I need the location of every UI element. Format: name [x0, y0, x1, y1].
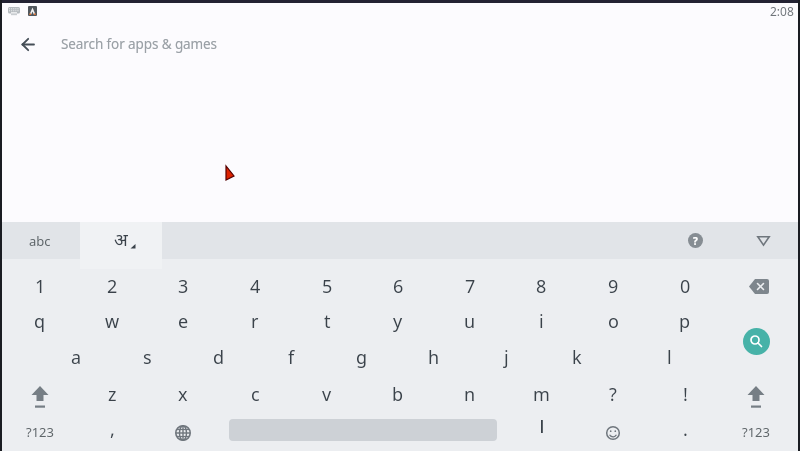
button[interactable]: [14, 30, 42, 58]
button[interactable]: n: [434, 378, 506, 415]
staticText: ?123: [742, 423, 770, 441]
staticText: y: [393, 309, 403, 334]
button[interactable]: p: [649, 305, 721, 342]
button[interactable]: [147, 414, 219, 451]
staticText: Search for apps & games: [61, 35, 217, 53]
staticText: 5: [322, 274, 333, 299]
staticText: o: [608, 309, 619, 334]
button[interactable]: [750, 230, 776, 252]
button[interactable]: v: [291, 378, 363, 415]
staticText: !: [683, 382, 688, 407]
button[interactable]: [80, 222, 162, 269]
staticText: 3: [178, 274, 189, 299]
button[interactable]: 9: [577, 268, 649, 305]
button[interactable]: h: [398, 341, 470, 378]
staticText: m: [533, 382, 550, 407]
staticText: i: [539, 309, 544, 334]
staticText: p: [679, 309, 691, 334]
button[interactable]: j: [470, 341, 542, 378]
button[interactable]: u: [434, 305, 506, 342]
button[interactable]: [4, 378, 76, 415]
button[interactable]: 8: [505, 268, 577, 305]
button[interactable]: k: [541, 341, 613, 378]
button[interactable]: [720, 378, 792, 415]
button[interactable]: Search for apps & games: [61, 30, 461, 58]
staticText: 2: [107, 274, 118, 299]
button[interactable]: m: [505, 378, 577, 415]
staticText: u: [464, 309, 476, 334]
button[interactable]: l: [633, 341, 705, 378]
staticText: abc: [29, 232, 51, 250]
button[interactable]: .: [649, 414, 721, 451]
button[interactable]: 2: [76, 268, 148, 305]
staticText: 4: [250, 274, 261, 299]
staticText: w: [105, 309, 120, 334]
button[interactable]: ?: [688, 233, 703, 248]
staticText: e: [178, 309, 189, 334]
button[interactable]: ,: [76, 414, 148, 451]
staticText: q: [34, 309, 46, 334]
button[interactable]: !: [649, 378, 721, 415]
staticText: 9: [608, 274, 619, 299]
button[interactable]: a: [40, 341, 112, 378]
button[interactable]: 6: [362, 268, 434, 305]
staticText: s: [143, 345, 152, 370]
button[interactable]: ?123: [4, 414, 76, 451]
button[interactable]: x: [147, 378, 219, 415]
staticText: 7: [465, 274, 476, 299]
staticText: ?: [609, 382, 617, 407]
button[interactable]: 0: [649, 268, 721, 305]
staticText: c: [251, 382, 260, 407]
button[interactable]: ?: [577, 378, 649, 415]
button[interactable]: 7: [434, 268, 506, 305]
staticText: r: [251, 309, 259, 334]
staticText: b: [392, 382, 404, 407]
staticText: 8: [536, 274, 547, 299]
button[interactable]: e: [147, 305, 219, 342]
button[interactable]: t: [291, 305, 363, 342]
button[interactable]: s: [111, 341, 183, 378]
button[interactable]: 4: [219, 268, 291, 305]
button[interactable]: f: [255, 341, 327, 378]
staticText: अ: [114, 227, 128, 252]
staticText: .: [683, 417, 688, 442]
staticText: a: [71, 345, 82, 370]
button[interactable]: 5: [291, 268, 363, 305]
staticText: 1: [35, 274, 46, 299]
button[interactable]: z: [76, 378, 148, 415]
staticText: j: [504, 345, 509, 370]
button[interactable]: abc: [0, 222, 80, 259]
button[interactable]: 1: [4, 268, 76, 305]
button[interactable]: b: [362, 378, 434, 415]
staticText: k: [572, 345, 582, 370]
button[interactable]: 3: [147, 268, 219, 305]
staticText: x: [178, 382, 188, 407]
button[interactable]: d: [183, 341, 255, 378]
button[interactable]: [738, 323, 774, 359]
button[interactable]: w: [76, 305, 148, 342]
button[interactable]: [723, 268, 795, 305]
button[interactable]: o: [577, 305, 649, 342]
staticText: g: [356, 345, 368, 370]
staticText: f: [288, 345, 295, 370]
staticText: 6: [393, 274, 404, 299]
button[interactable]: ?123: [720, 414, 792, 451]
staticText: h: [428, 345, 440, 370]
staticText: l: [667, 345, 672, 370]
staticText: ?123: [26, 423, 54, 441]
button[interactable]: g: [326, 341, 398, 378]
staticText: v: [322, 382, 332, 407]
staticText: z: [108, 382, 117, 407]
button[interactable]: c: [219, 378, 291, 415]
button[interactable]: y: [362, 305, 434, 342]
staticText: 0: [680, 274, 691, 299]
button[interactable]: i: [505, 305, 577, 342]
button[interactable]: r: [219, 305, 291, 342]
staticText: n: [464, 382, 476, 407]
button[interactable]: q: [4, 305, 76, 342]
staticText: t: [324, 309, 331, 334]
staticText: ,: [110, 417, 115, 442]
staticText: d: [213, 345, 225, 370]
button[interactable]: [577, 414, 649, 451]
